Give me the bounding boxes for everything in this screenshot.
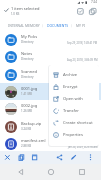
button[interactable]: Notes	[0, 48, 101, 65]
button[interactable]	[18, 169, 24, 175]
button[interactable]: Transfer	[49, 105, 99, 117]
staticText: 1.0 KB	[11, 12, 20, 16]
staticText: Create shortcut	[63, 120, 93, 126]
button[interactable]: My Picks	[0, 31, 101, 48]
button[interactable]: 0002.jpg	[0, 100, 101, 117]
staticText: Directory	[21, 57, 34, 61]
button[interactable]	[4, 8, 9, 12]
staticText: Scanned	[21, 69, 38, 74]
staticText: 1 item selected	[11, 6, 40, 11]
staticText: Encrypt	[63, 84, 78, 90]
button[interactable]	[48, 169, 54, 175]
button[interactable]	[70, 154, 77, 161]
button[interactable]: 0001.jpg	[0, 83, 101, 100]
staticText: Properties	[63, 132, 83, 138]
staticText: 0002.jpg	[21, 103, 38, 108]
staticText: 〉	[69, 23, 76, 28]
button[interactable]: Encrypt	[49, 81, 99, 93]
button[interactable]	[89, 8, 97, 15]
staticText: Aug 23, 2018, 3:06:09 PM	[67, 58, 98, 62]
button[interactable]	[4, 154, 11, 161]
staticText: Notes	[21, 51, 33, 56]
button[interactable]	[31, 154, 38, 161]
button[interactable]: Properties	[49, 129, 99, 141]
staticText: Open with	[63, 96, 83, 102]
staticText: Directory	[21, 40, 34, 44]
staticText: My Picks	[21, 34, 38, 39]
button[interactable]	[79, 169, 85, 175]
staticText: manifest.xml	[21, 138, 46, 143]
staticText: Directory	[21, 75, 34, 79]
button[interactable]	[56, 154, 63, 161]
button[interactable]: Scanned	[0, 66, 101, 83]
staticText: Sep 29, 2018, 7:49:41 PM	[67, 41, 98, 45]
button[interactable]: INTERNAL MEMORY	[8, 23, 40, 28]
button[interactable]	[77, 8, 84, 15]
staticText: Aug 23, 2018, 3:06:09 PM	[67, 110, 98, 114]
staticText: 1.26 MB	[21, 109, 32, 113]
staticText: 2.88 KB	[21, 144, 32, 148]
button[interactable]	[18, 154, 25, 161]
staticText: Archive	[63, 72, 78, 78]
staticText: 1.41 MB	[21, 92, 32, 96]
button[interactable]	[87, 154, 94, 161]
button[interactable]: Backup.zip	[0, 118, 101, 135]
button[interactable]: manifest.xml	[0, 135, 101, 152]
staticText: Jan 24, 2029, 4:25:56 AM	[68, 145, 98, 149]
staticText: Transfer	[63, 108, 79, 114]
staticText: 〉	[40, 23, 47, 28]
staticText: 0001.jpg	[21, 86, 38, 91]
button[interactable]: Open with	[49, 93, 99, 105]
staticText: Backup.zip	[21, 121, 42, 126]
staticText: 7:24	[91, 0, 97, 4]
button[interactable]: MY PI	[76, 23, 86, 28]
button[interactable]: Archive	[49, 69, 99, 81]
staticText: 3.24 KB	[21, 127, 32, 131]
button[interactable]: Create shortcut	[49, 117, 99, 129]
button[interactable]: DOCUMENTS	[47, 23, 69, 28]
